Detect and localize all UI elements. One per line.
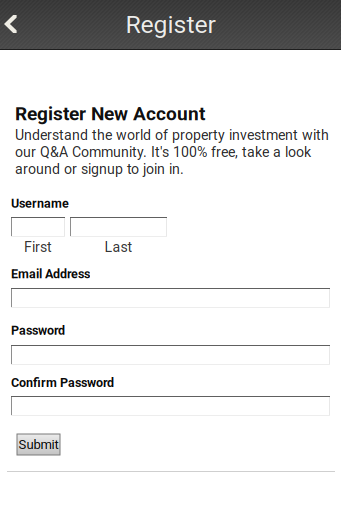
staticText: Username [11, 196, 69, 211]
staticText: Email Address [11, 266, 90, 281]
button[interactable]: Submit [17, 434, 60, 455]
staticText: our Q&A Community. It's 100% free, take … [15, 144, 311, 160]
staticText: around or signup to join in. [15, 161, 184, 177]
staticText: Last [104, 239, 132, 256]
button[interactable]: Back [0, 0, 40, 49]
staticText: Understand the world of property investm… [15, 127, 329, 143]
staticText: First [24, 239, 52, 256]
staticText: Register New Account [15, 103, 205, 125]
staticText: Submit [18, 437, 58, 452]
staticText: Register [125, 10, 215, 39]
staticText: Confirm Password [11, 375, 114, 390]
staticText: Password [11, 323, 65, 338]
